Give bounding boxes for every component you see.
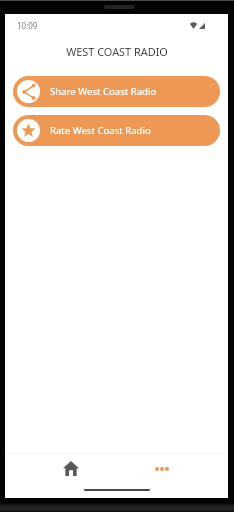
button[interactable]: More options [116, 455, 207, 482]
button[interactable]: Rate West Coast Radio [13, 115, 220, 146]
button[interactable]: Share West Coast Radio [13, 76, 220, 107]
staticText: WEST COAST RADIO [66, 44, 168, 59]
staticText: Rate West Coast Radio [50, 124, 151, 137]
staticText: 10:09 [17, 20, 38, 31]
staticText: Share West Coast Radio [50, 85, 157, 98]
button[interactable]: Home [26, 455, 116, 482]
